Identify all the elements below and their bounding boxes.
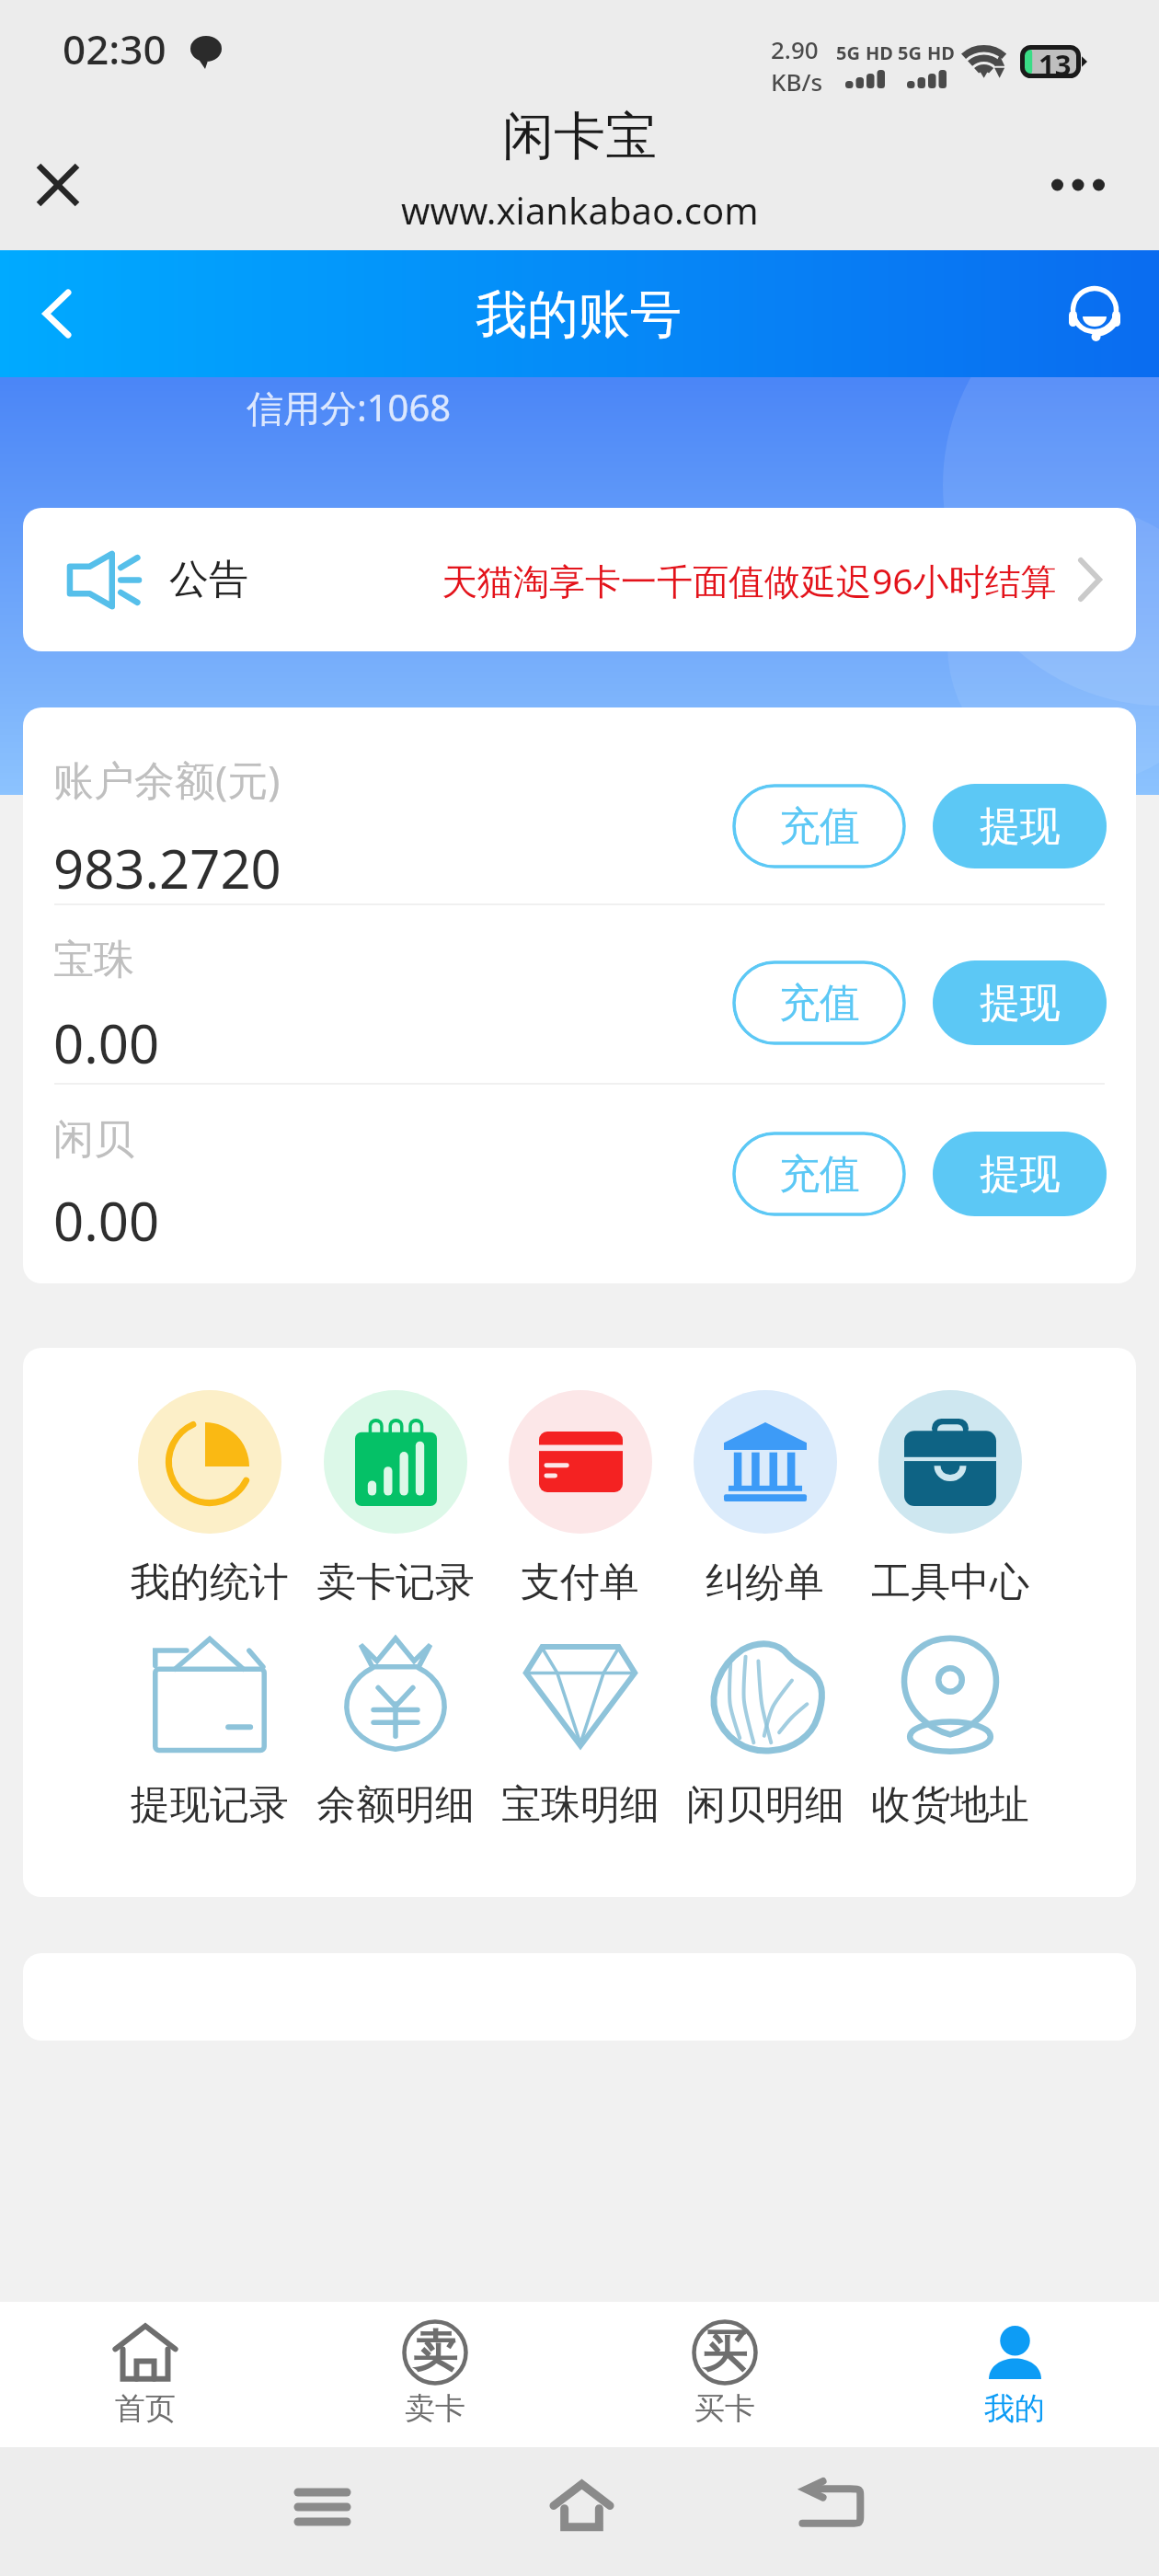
button[interactable]: 提现记录	[117, 1637, 303, 1830]
button[interactable]: 支付单	[488, 1390, 672, 1607]
staticText: KB/s	[771, 65, 823, 98]
staticText: 闲卡宝	[502, 104, 657, 169]
staticText: 信用分:1068	[247, 382, 452, 432]
button[interactable]: 卖卡记录	[303, 1390, 488, 1607]
staticText: 983.2720	[53, 832, 281, 904]
staticText: 0.00	[53, 1184, 160, 1257]
button[interactable]: Customer service	[1053, 272, 1136, 355]
button[interactable]: 充值	[732, 960, 906, 1045]
button[interactable]: 余额明细	[303, 1637, 488, 1830]
button[interactable]: Back	[16, 272, 98, 355]
staticText: 我的账号	[476, 282, 682, 348]
staticText: HD	[866, 40, 893, 65]
button[interactable]: Back	[784, 2459, 876, 2551]
button[interactable]: 买	[579, 2302, 869, 2447]
staticText: 提现记录	[131, 1780, 289, 1830]
staticText: 支付单	[521, 1558, 639, 1607]
staticText: 纠纷单	[706, 1558, 824, 1607]
button[interactable]: 提现	[933, 784, 1107, 868]
staticText: 13	[1039, 45, 1072, 78]
staticText: HD	[927, 40, 955, 65]
staticText: 我的	[984, 2389, 1045, 2428]
staticText: 02:30	[63, 21, 166, 76]
button[interactable]: 提现	[933, 1132, 1107, 1216]
staticText: 买	[703, 2324, 747, 2379]
button[interactable]: 充值	[732, 784, 906, 868]
staticText: 卖卡记录	[316, 1558, 475, 1607]
button[interactable]: 公告	[23, 508, 1136, 651]
staticText: 卖	[413, 2324, 457, 2379]
button[interactable]: Recent apps	[276, 2461, 368, 2553]
button[interactable]: 闲贝明细	[672, 1637, 857, 1830]
button[interactable]: 提现	[933, 960, 1107, 1045]
staticText: 5G	[898, 40, 922, 65]
staticText: 买卡	[694, 2389, 755, 2428]
staticText: 提现	[980, 978, 1061, 1029]
staticText: 闲贝明细	[686, 1780, 844, 1830]
button[interactable]: 卖	[290, 2302, 579, 2447]
staticText: 充值	[779, 801, 860, 852]
button[interactable]: 首页	[0, 2302, 290, 2447]
button[interactable]: 纠纷单	[672, 1390, 857, 1607]
button[interactable]: 宝珠明细	[488, 1637, 672, 1830]
staticText: 首页	[115, 2389, 176, 2428]
button[interactable]: 充值	[732, 1132, 906, 1216]
staticText: 提现	[980, 801, 1061, 852]
staticText: 账户余额(元)	[53, 752, 281, 807]
staticText: 宝珠明细	[501, 1780, 660, 1830]
staticText: 充值	[779, 978, 860, 1029]
button[interactable]: Close	[19, 146, 97, 224]
staticText: 公告	[169, 555, 248, 604]
staticText: 余额明细	[316, 1780, 475, 1830]
staticText: 2.90	[771, 33, 819, 65]
button[interactable]: 我的统计	[117, 1390, 303, 1607]
button[interactable]: 收货地址	[857, 1637, 1042, 1830]
staticText: www.xiankabao.com	[401, 185, 759, 235]
staticText: 我的统计	[131, 1558, 289, 1607]
staticText: 提现	[980, 1149, 1061, 1200]
button[interactable]: 我的	[869, 2302, 1159, 2447]
staticText: 0.00	[53, 1006, 160, 1079]
staticText: 卖卡	[405, 2389, 465, 2428]
button[interactable]: More options	[1039, 146, 1117, 224]
button[interactable]: Home	[535, 2459, 627, 2551]
staticText: 工具中心	[871, 1558, 1029, 1607]
staticText: 宝珠	[53, 935, 134, 985]
staticText: 天猫淘享卡一千面值做延迟96小时结算	[442, 556, 1057, 604]
staticText: 充值	[779, 1149, 860, 1200]
button[interactable]: 工具中心	[857, 1390, 1042, 1607]
staticText: 收货地址	[871, 1780, 1029, 1830]
staticText: 5G	[836, 40, 860, 65]
staticText: 闲贝	[53, 1114, 134, 1165]
